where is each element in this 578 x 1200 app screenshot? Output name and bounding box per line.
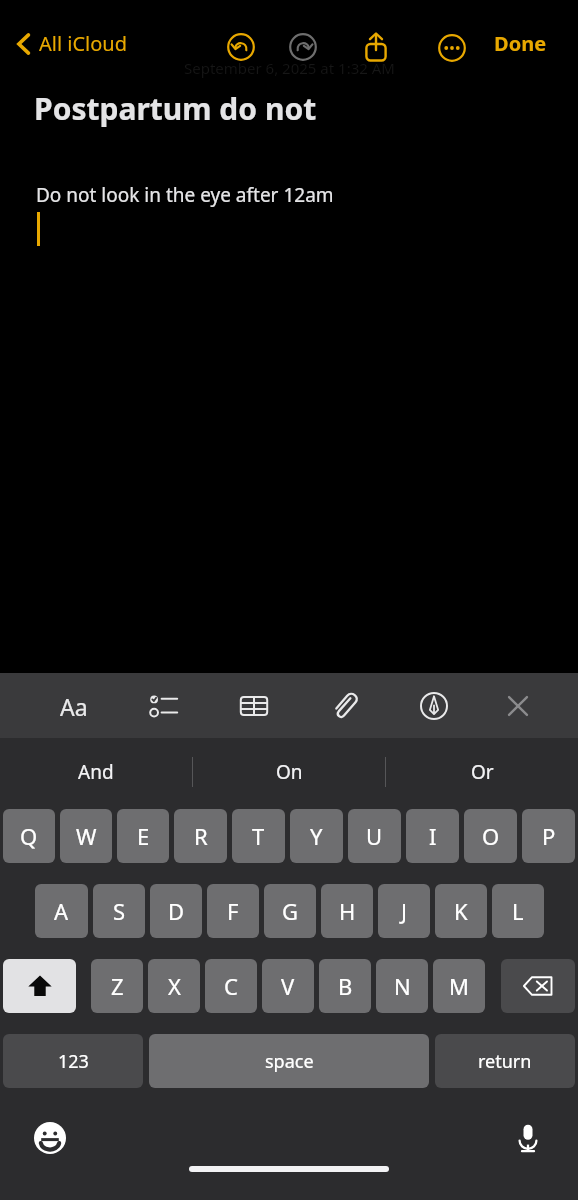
button[interactable]: 123 (3, 1034, 143, 1088)
button[interactable]: Dictate (504, 1114, 552, 1162)
button[interactable]: Attach (316, 678, 372, 734)
staticText: U (366, 821, 383, 851)
button[interactable]: And (0, 738, 192, 805)
button[interactable]: F (207, 884, 259, 938)
button[interactable]: E (117, 809, 169, 863)
staticText: W (76, 821, 97, 851)
staticText: Y (310, 821, 323, 851)
button[interactable]: J (378, 884, 430, 938)
staticText: X (168, 971, 181, 1001)
staticText: Aa (60, 691, 88, 722)
staticText: Do not look in the eye after 12am (36, 182, 334, 208)
button[interactable]: Done (488, 26, 553, 61)
button[interactable]: Undo (222, 28, 260, 66)
staticText: Or (471, 759, 494, 785)
staticText: 123 (58, 1049, 89, 1074)
staticText: I (429, 821, 437, 851)
button[interactable]: Table (226, 678, 282, 734)
button[interactable]: G (264, 884, 316, 938)
staticText: E (137, 821, 150, 851)
button[interactable]: Redo (284, 28, 322, 66)
button[interactable]: Y (290, 809, 343, 863)
button[interactable]: On (193, 738, 385, 805)
staticText: R (194, 821, 208, 851)
staticText: A (54, 896, 69, 926)
staticText: G (282, 896, 299, 926)
button[interactable]: H (321, 884, 373, 938)
staticText: All iCloud (39, 30, 128, 57)
button[interactable]: Markup (406, 678, 462, 734)
button[interactable]: O (464, 809, 517, 863)
staticText: Done (494, 30, 547, 57)
button[interactable]: Emoji (26, 1114, 74, 1162)
button[interactable]: All iCloud (10, 26, 134, 61)
button[interactable]: T (232, 809, 285, 863)
staticText: return (478, 1049, 532, 1074)
staticText: On (276, 759, 303, 785)
button[interactable]: Checklist (136, 678, 192, 734)
staticText: B (338, 971, 353, 1001)
staticText: D (168, 896, 185, 926)
button[interactable]: P (522, 809, 575, 863)
button[interactable]: return (435, 1034, 575, 1088)
button[interactable]: S (93, 884, 145, 938)
staticText: C (224, 971, 238, 1001)
staticText: O (482, 821, 500, 851)
button[interactable]: More options (432, 28, 472, 68)
button[interactable]: D (150, 884, 202, 938)
staticText: V (281, 971, 295, 1001)
button[interactable]: I (406, 809, 459, 863)
staticText: T (252, 821, 265, 851)
button[interactable]: U (348, 809, 401, 863)
button[interactable]: N (376, 959, 428, 1013)
button[interactable]: space (149, 1034, 429, 1088)
button[interactable]: B (319, 959, 371, 1013)
button[interactable]: A (35, 884, 88, 938)
button[interactable]: Shift (3, 959, 76, 1013)
staticText: N (394, 971, 411, 1001)
button[interactable]: Or (386, 738, 578, 805)
button[interactable]: L (492, 884, 544, 938)
staticText: Postpartum do not (34, 88, 317, 129)
button[interactable]: K (435, 884, 487, 938)
button[interactable]: Backspace (501, 959, 575, 1013)
staticText: September 6, 2025 at 1:32 AM (184, 58, 395, 78)
staticText: F (227, 896, 239, 926)
staticText: K (454, 896, 468, 926)
button[interactable]: Close keyboard (490, 678, 546, 734)
button[interactable]: Q (3, 809, 55, 863)
staticText: space (265, 1049, 314, 1074)
button[interactable]: C (205, 959, 257, 1013)
button[interactable]: Z (91, 959, 143, 1013)
staticText: P (542, 821, 556, 851)
staticText: H (339, 896, 356, 926)
staticText: Z (111, 971, 124, 1001)
staticText: And (78, 759, 114, 785)
staticText: L (512, 896, 524, 926)
button[interactable]: R (174, 809, 227, 863)
staticText: S (113, 896, 126, 926)
button[interactable]: V (262, 959, 314, 1013)
button[interactable]: X (148, 959, 200, 1013)
button[interactable]: Share (355, 26, 397, 68)
staticText: M (449, 971, 469, 1001)
staticText: J (401, 896, 408, 926)
button[interactable]: W (60, 809, 112, 863)
button[interactable]: Text format (46, 678, 102, 734)
button[interactable]: M (433, 959, 485, 1013)
staticText: Q (20, 821, 38, 851)
